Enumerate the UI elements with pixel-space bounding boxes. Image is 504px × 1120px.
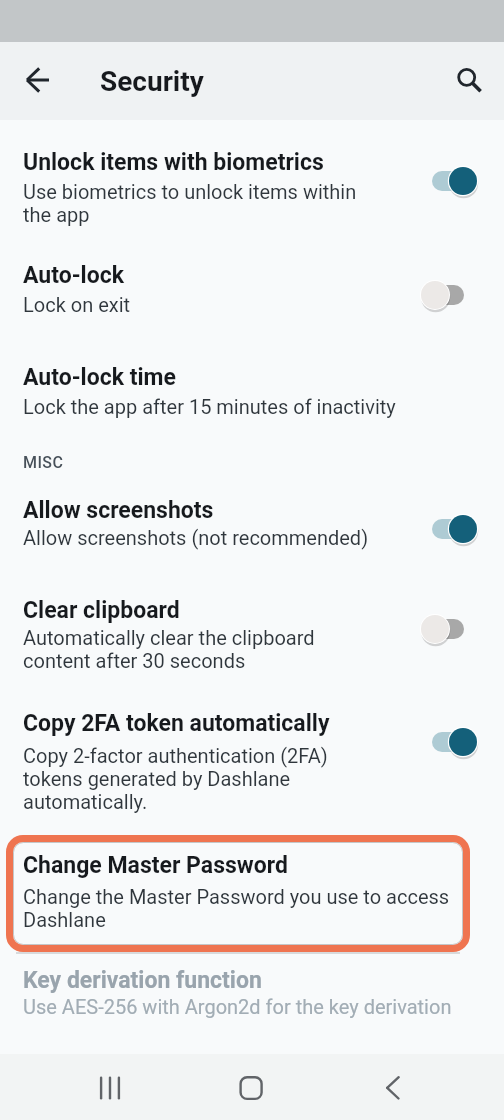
staticText: Unlock items with biometrics — [23, 149, 324, 176]
staticText: Auto-lock — [23, 262, 125, 289]
button[interactable] — [421, 267, 477, 323]
button[interactable] — [0, 483, 504, 565]
button[interactable] — [421, 601, 477, 657]
staticText: Allow screenshots (not recommended) — [23, 526, 369, 549]
staticText: Automatically clear the clipboard conten… — [23, 626, 315, 672]
staticText: Lock on exit — [23, 293, 131, 316]
staticText: Change the Master Password you use to ac… — [23, 885, 450, 931]
staticText: Lock the app after 15 minutes of inactiv… — [23, 395, 396, 418]
button[interactable] — [227, 1064, 275, 1112]
button[interactable] — [0, 695, 504, 824]
button[interactable] — [0, 583, 504, 685]
staticText: Use biometrics to unlock items within th… — [23, 180, 357, 226]
button[interactable] — [421, 714, 477, 770]
staticText: Allow screenshots — [23, 497, 214, 524]
button[interactable] — [0, 248, 504, 335]
staticText: Use AES-256 with Argon2d for the key der… — [23, 995, 452, 1018]
staticText: Change Master Password — [23, 852, 288, 879]
button[interactable] — [0, 135, 504, 240]
button[interactable] — [86, 1064, 134, 1112]
staticText: Key derivation function — [23, 967, 262, 994]
staticText: Copy 2FA token automatically — [23, 710, 330, 737]
staticText: Clear clipboard — [23, 597, 180, 624]
staticText: MISC — [23, 453, 64, 472]
button[interactable] — [6, 835, 470, 952]
staticText: Copy 2-factor authentication (2FA) token… — [23, 744, 328, 813]
staticText: Auto-lock time — [23, 364, 176, 391]
button[interactable] — [369, 1064, 417, 1112]
button[interactable] — [421, 153, 477, 209]
button[interactable] — [0, 955, 504, 1030]
staticText: Security — [100, 65, 204, 98]
button[interactable] — [443, 56, 491, 104]
button[interactable] — [0, 348, 504, 432]
button[interactable] — [421, 501, 477, 557]
button[interactable] — [14, 56, 62, 104]
